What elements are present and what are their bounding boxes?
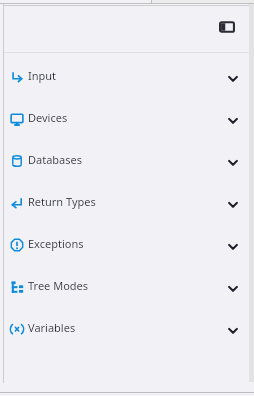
button[interactable]: Devices	[3, 98, 249, 140]
button[interactable]: Toggle tool window	[216, 16, 238, 38]
button[interactable]: Input	[3, 56, 249, 98]
button[interactable]: Variables	[3, 308, 249, 350]
staticText: Databases	[28, 152, 83, 167]
button[interactable]: Exceptions	[3, 224, 249, 266]
button[interactable]: Return Types	[3, 182, 249, 224]
staticText: Input	[28, 68, 57, 83]
staticText: Devices	[28, 110, 68, 125]
button[interactable]: Databases	[3, 140, 249, 182]
staticText: Tree Modes	[28, 278, 89, 293]
button[interactable]: Tree Modes	[3, 266, 249, 308]
staticText: Variables	[28, 320, 76, 335]
staticText: Exceptions	[28, 236, 84, 251]
staticText: Return Types	[28, 194, 96, 209]
